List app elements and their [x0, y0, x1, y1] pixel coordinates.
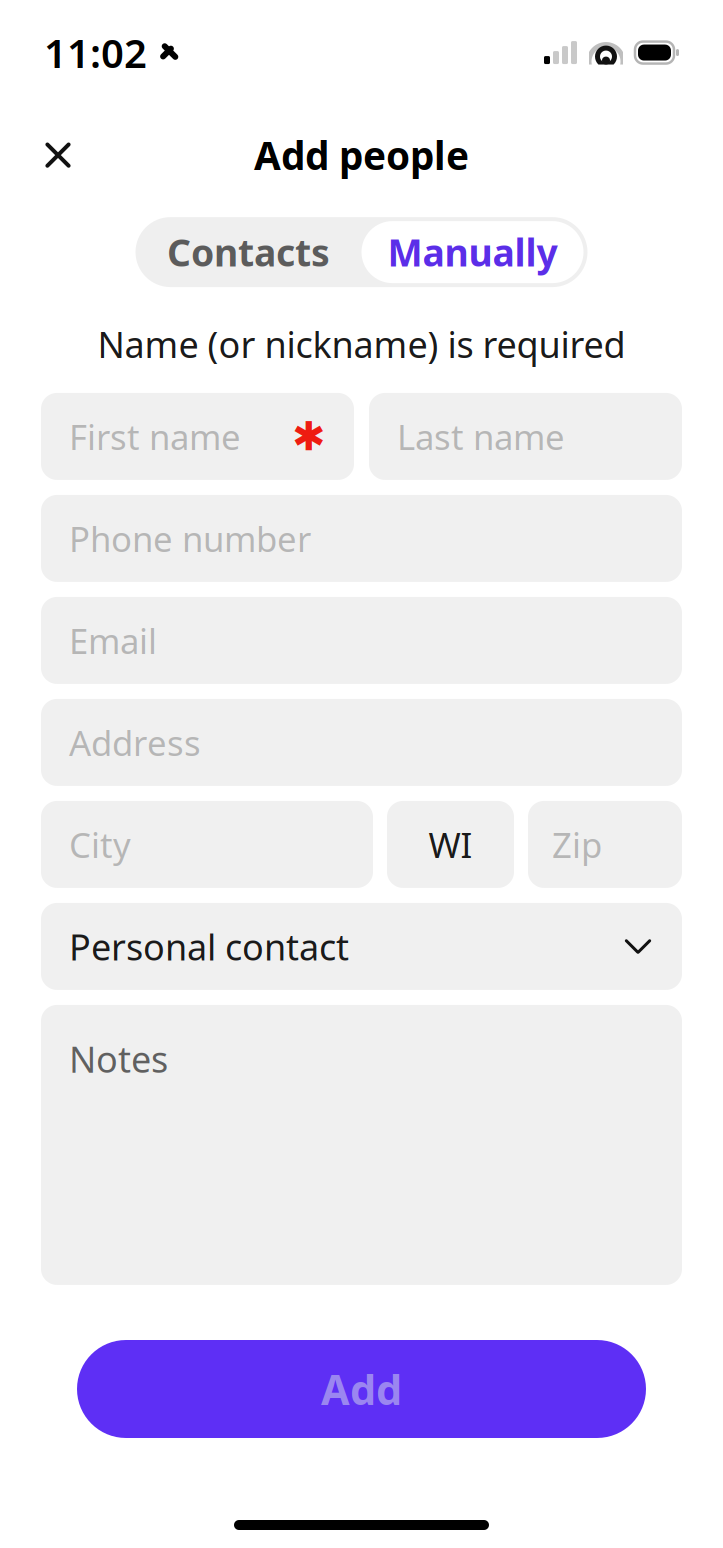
button[interactable]: Close	[30, 127, 86, 183]
staticText: First name	[69, 413, 241, 459]
staticText: Email	[69, 617, 157, 663]
staticText: City	[69, 821, 131, 867]
staticText: Phone number	[69, 515, 311, 561]
button[interactable]: Email	[41, 597, 682, 684]
button[interactable]: Address	[41, 699, 682, 786]
staticText: Last name	[397, 413, 565, 459]
staticText: Contacts	[167, 227, 330, 277]
staticText: Personal contact	[69, 922, 349, 970]
button[interactable]: Phone number	[41, 495, 682, 582]
staticText: ✱	[292, 414, 326, 459]
button[interactable]: Manually	[361, 221, 587, 283]
staticText: Add	[321, 1362, 402, 1416]
staticText: 11:02	[44, 26, 147, 79]
staticText: Manually	[387, 227, 557, 277]
button[interactable]: Zip	[528, 801, 682, 888]
button[interactable]: WI	[387, 801, 514, 888]
button[interactable]: Contacts	[135, 217, 361, 287]
staticText: Add people	[254, 129, 469, 181]
staticText: Notes	[69, 1035, 168, 1083]
button[interactable]: Notes	[41, 1005, 682, 1285]
staticText: WI	[428, 821, 472, 867]
button[interactable]: Add	[77, 1340, 646, 1438]
staticText: Zip	[552, 821, 602, 867]
button[interactable]: Personal contact	[41, 903, 682, 990]
staticText: Address	[69, 719, 201, 765]
staticText: Name (or nickname) is required	[97, 320, 625, 368]
